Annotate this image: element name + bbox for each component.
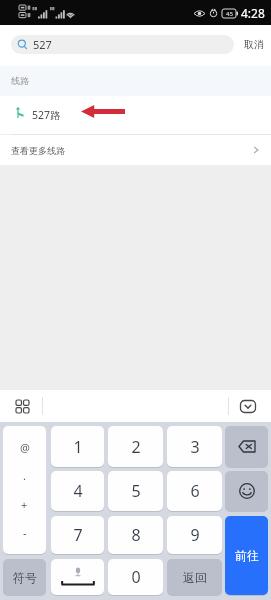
button[interactable]: 0 [108, 559, 163, 595]
staticText: 1 [73, 436, 83, 458]
staticText: 返回 [183, 570, 207, 585]
staticText: . [23, 468, 26, 483]
button[interactable]: Space [51, 559, 104, 595]
button[interactable]: 527 [11, 35, 234, 54]
staticText: - [23, 525, 27, 540]
button[interactable]: 前往 [225, 516, 268, 595]
button[interactable]: 8 [108, 516, 163, 554]
staticText: 4:28 [241, 5, 265, 21]
staticText: 7 [73, 524, 83, 546]
staticText: 2 [131, 436, 141, 458]
button[interactable]: 查看更多线路 [0, 135, 271, 165]
button[interactable]: 2 [108, 426, 163, 467]
button[interactable]: 5 [108, 471, 163, 511]
button[interactable]: Keyboard layouts [16, 400, 29, 413]
staticText: 527 [33, 37, 52, 52]
staticText: 线路 [11, 75, 29, 86]
staticText: 9 [190, 524, 200, 546]
button[interactable]: @ [3, 426, 46, 554]
staticText: 45 [226, 10, 233, 18]
button[interactable]: 3 [167, 426, 222, 467]
button[interactable]: 1 [51, 426, 104, 467]
staticText: 5 [131, 480, 141, 502]
button[interactable]: Emoji [225, 471, 268, 511]
staticText: 6 [190, 480, 200, 502]
button[interactable]: 6 [167, 471, 222, 511]
button[interactable]: 4 [51, 471, 104, 511]
button[interactable]: Hide keyboard [240, 400, 256, 413]
staticText: + [21, 497, 28, 512]
staticText: 8 [131, 524, 141, 546]
staticText: 0 [131, 566, 141, 588]
staticText: 3 [190, 436, 200, 458]
button[interactable]: 取消 [238, 35, 269, 54]
button[interactable]: 527路 [0, 96, 271, 134]
button[interactable]: 符号 [3, 559, 46, 595]
staticText: 取消 [244, 38, 264, 51]
staticText: 4 [73, 480, 83, 502]
button[interactable]: 7 [51, 516, 104, 554]
staticText: 符号 [13, 570, 37, 585]
staticText: 查看更多线路 [11, 145, 65, 156]
button[interactable]: 返回 [167, 559, 222, 595]
staticText: 527路 [32, 108, 61, 122]
staticText: @ [20, 440, 30, 455]
button[interactable]: 9 [167, 516, 222, 554]
button[interactable]: Delete [225, 426, 268, 467]
staticText: 前往 [235, 548, 259, 563]
